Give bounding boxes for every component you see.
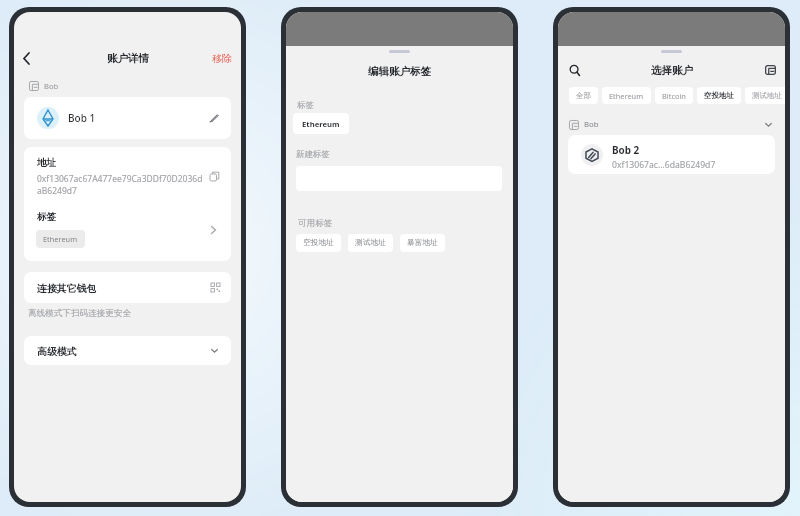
staticText: Bob 1 <box>68 111 96 125</box>
staticText: 移除 <box>212 52 232 65</box>
button[interactable]: 测试地址 <box>348 234 393 252</box>
staticText: 测试地址 <box>752 91 782 100</box>
staticText: 地址 <box>37 157 57 169</box>
staticText: 高级模式 <box>37 345 77 357</box>
staticText: Bitcoin <box>662 91 686 101</box>
staticText: Ethereum <box>302 119 340 129</box>
button[interactable]: Ethereum <box>293 113 349 134</box>
button[interactable]: 高级模式 <box>24 336 231 365</box>
button[interactable]: 空投地址 <box>697 87 741 104</box>
staticText: 全部 <box>576 91 591 100</box>
staticText: Ethereum <box>43 234 78 244</box>
staticText: 编辑账户标签 <box>368 65 431 78</box>
button[interactable]: 移除 <box>208 46 235 70</box>
button[interactable]: Bob <box>29 81 59 91</box>
button[interactable]: Back <box>15 46 37 70</box>
staticText: 0xf13067ac...6daB6249d7 <box>612 159 716 171</box>
staticText: 选择账户 <box>651 64 693 77</box>
staticText: 测试地址 <box>355 238 386 248</box>
staticText: 连接其它钱包 <box>37 282 97 294</box>
staticText: 空投地址 <box>303 238 334 248</box>
staticText: 离线模式下扫码连接更安全 <box>28 308 132 319</box>
button[interactable]: Search <box>558 57 592 83</box>
button[interactable]: Bob <box>569 118 774 131</box>
staticText: 账户详情 <box>107 52 149 65</box>
button[interactable]: Ethereum <box>36 230 85 248</box>
button[interactable]: Accounts <box>751 57 785 83</box>
staticText: 标签 <box>37 211 57 223</box>
button[interactable]: Edit <box>207 111 221 125</box>
button[interactable]: 空投地址 <box>296 234 341 252</box>
staticText: 新建标签 <box>296 149 330 160</box>
button[interactable]: 测试地址 <box>745 87 785 104</box>
staticText: Bob <box>584 119 599 130</box>
staticText: 标签 <box>297 100 314 111</box>
staticText: Bob 2 <box>612 143 640 156</box>
button[interactable]: 连接其它钱包 <box>24 272 231 303</box>
staticText: 空投地址 <box>704 91 734 100</box>
button[interactable]: Bob 1 <box>24 97 231 139</box>
staticText: Bob <box>44 81 59 91</box>
button[interactable]: 暴富地址 <box>400 234 445 252</box>
button[interactable]: Bitcoin <box>655 87 693 104</box>
staticText: 0xf13067ac67A477ee79Ca3DDf70D2036daB6249… <box>37 173 205 197</box>
staticText: 暴富地址 <box>407 238 438 248</box>
button[interactable]: Bob 2 <box>568 135 775 174</box>
staticText: 可用标签 <box>298 218 333 229</box>
button[interactable]: Copy <box>207 169 221 183</box>
button[interactable]: 全部 <box>569 87 598 104</box>
staticText: Ethereum <box>609 91 644 101</box>
button[interactable]: Ethereum <box>602 87 651 104</box>
